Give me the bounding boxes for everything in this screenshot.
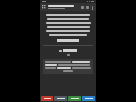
button[interactable]: Share: [82, 96, 95, 101]
button[interactable]: [48, 5, 80, 9]
button[interactable]: Bookmark: [85, 5, 90, 10]
button[interactable]: Accept: [68, 96, 81, 101]
button[interactable]: Delete: [41, 96, 53, 101]
button[interactable]: Edit: [54, 96, 67, 101]
button[interactable]: Search: [80, 5, 85, 10]
button[interactable]: [43, 59, 93, 74]
button[interactable]: More options: [90, 5, 95, 10]
button[interactable]: Menu: [41, 4, 47, 10]
